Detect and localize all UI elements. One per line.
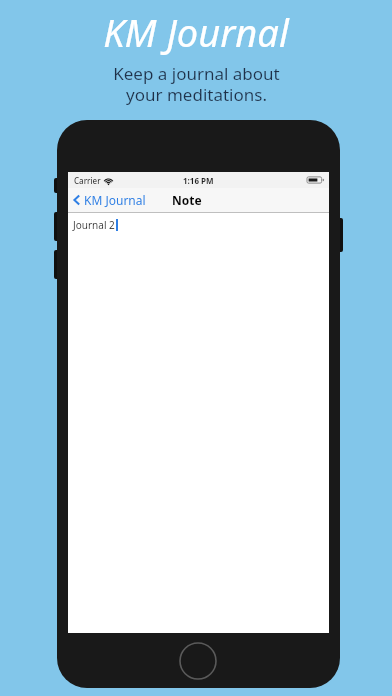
button[interactable]: Journal 2 <box>68 213 329 633</box>
staticText: KM Journal <box>103 6 289 58</box>
staticText: Keep a journal about your meditations. <box>113 62 280 106</box>
staticText: Carrier <box>74 175 101 186</box>
button[interactable]: Home <box>179 642 217 680</box>
staticText: Journal 2 <box>73 218 115 232</box>
staticText: Note <box>172 192 202 208</box>
staticText: KM Journal <box>84 192 146 208</box>
staticText: 1:16 PM <box>183 175 214 186</box>
button[interactable]: KM Journal <box>72 192 146 208</box>
